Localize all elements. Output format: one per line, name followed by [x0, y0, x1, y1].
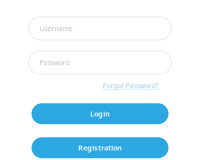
- staticText: Login: [90, 109, 110, 119]
- button[interactable]: Password: [28, 51, 171, 74]
- button[interactable]: Username: [28, 17, 171, 40]
- button[interactable]: Registration: [31, 137, 168, 158]
- button[interactable]: Login: [31, 103, 168, 124]
- staticText: Forgot Password?: [102, 81, 158, 90]
- staticText: Username: [39, 24, 72, 33]
- button[interactable]: Forgot Password?: [102, 81, 158, 90]
- staticText: Registration: [78, 143, 122, 153]
- staticText: Password: [39, 58, 69, 67]
